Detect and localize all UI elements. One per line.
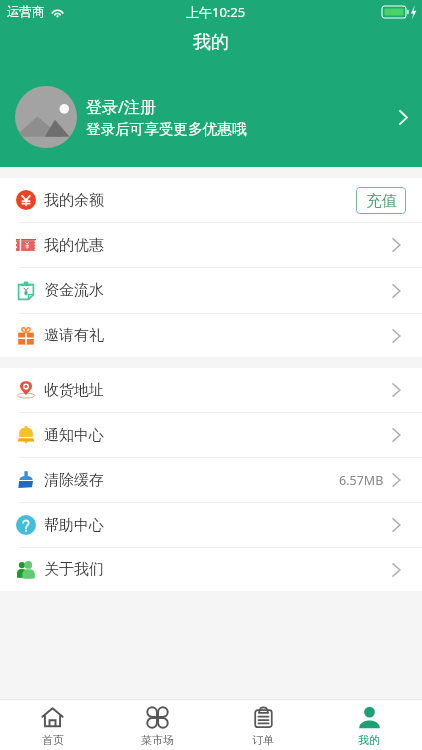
button[interactable]: 收货地址 <box>0 368 422 412</box>
staticText: 邀请有礼 <box>44 326 104 345</box>
button[interactable]: 清除缓存 <box>0 458 422 502</box>
staticText: 帮助中心 <box>44 516 104 535</box>
staticText: 我的优惠 <box>44 236 104 255</box>
button[interactable]: 我的优惠 <box>0 223 422 267</box>
button[interactable]: 资金流水 <box>0 268 422 313</box>
staticText: 上午10:25 <box>186 3 246 21</box>
staticText: 关于我们 <box>44 560 104 579</box>
staticText: 资金流水 <box>44 281 104 300</box>
button[interactable]: 充值 <box>356 187 406 214</box>
staticText: 收货地址 <box>44 381 104 400</box>
button[interactable]: 订单 <box>210 700 316 750</box>
staticText: 通知中心 <box>44 426 104 445</box>
staticText: 首页 <box>42 733 64 747</box>
button[interactable]: 邀请有礼 <box>0 314 422 357</box>
button[interactable]: 关于我们 <box>0 548 422 591</box>
button[interactable]: 首页 <box>0 700 105 750</box>
staticText: 我的余额 <box>44 191 104 210</box>
staticText: 我的 <box>0 31 422 54</box>
button[interactable]: 我的 <box>316 700 422 750</box>
staticText: 登录后可享受更多优惠哦 <box>86 120 247 138</box>
staticText: 充值 <box>366 191 397 211</box>
staticText: 登录/注册 <box>86 96 156 118</box>
staticText: 清除缓存 <box>44 471 104 490</box>
staticText: 订单 <box>252 733 274 747</box>
button[interactable]: 登录/注册 <box>0 79 422 155</box>
staticText: 6.57MB <box>339 472 384 489</box>
button[interactable]: 通知中心 <box>0 413 422 457</box>
button[interactable]: 我的余额 <box>0 178 422 222</box>
button[interactable]: 帮助中心 <box>0 503 422 547</box>
staticText: 运营商 <box>7 4 45 20</box>
staticText: 菜市场 <box>141 733 174 747</box>
button[interactable]: 菜市场 <box>105 700 210 750</box>
staticText: 我的 <box>358 733 380 747</box>
